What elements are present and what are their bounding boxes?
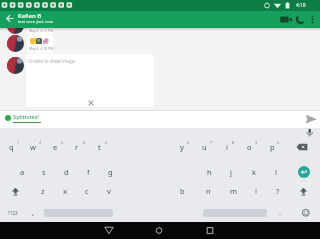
button[interactable] bbox=[299, 187, 308, 196]
button[interactable]: b bbox=[173, 184, 191, 198]
staticText: 7 bbox=[210, 140, 213, 145]
staticText: w bbox=[30, 142, 36, 152]
staticText: i bbox=[226, 142, 228, 152]
staticText: e bbox=[53, 142, 58, 152]
staticText: u bbox=[202, 142, 207, 152]
staticText: o bbox=[247, 142, 252, 152]
button[interactable] bbox=[3, 12, 16, 25]
staticText: 0 bbox=[277, 140, 280, 145]
staticText: 8 bbox=[232, 140, 235, 145]
button[interactable] bbox=[103, 225, 115, 236]
button[interactable] bbox=[296, 143, 309, 152]
button[interactable]: h bbox=[200, 165, 218, 179]
staticText: n bbox=[206, 186, 211, 196]
button[interactable] bbox=[279, 14, 294, 25]
button[interactable]: a bbox=[13, 165, 31, 179]
button[interactable]: w bbox=[24, 140, 42, 154]
button[interactable]: ? bbox=[269, 184, 287, 198]
staticText: t bbox=[98, 142, 101, 152]
staticText: p bbox=[270, 142, 275, 152]
button[interactable] bbox=[153, 225, 165, 236]
staticText: k bbox=[252, 167, 257, 177]
staticText: . bbox=[279, 207, 282, 217]
staticText: ! bbox=[255, 186, 258, 196]
staticText: d bbox=[64, 167, 69, 177]
button[interactable]: , bbox=[24, 205, 42, 219]
button[interactable] bbox=[305, 128, 315, 138]
button[interactable]: r bbox=[68, 140, 86, 154]
button[interactable] bbox=[307, 13, 318, 26]
button[interactable]: p bbox=[263, 140, 281, 154]
button[interactable]: z bbox=[34, 184, 52, 198]
staticText: x bbox=[63, 186, 67, 196]
button[interactable]: o bbox=[240, 140, 258, 154]
staticText: g bbox=[108, 167, 113, 177]
staticText: Unable to show image bbox=[28, 58, 76, 64]
button[interactable]: q bbox=[2, 140, 20, 154]
button[interactable]: k bbox=[245, 165, 263, 179]
button[interactable] bbox=[301, 208, 311, 218]
button[interactable]: n bbox=[199, 184, 217, 198]
staticText: 6 bbox=[187, 140, 190, 145]
staticText: b bbox=[180, 186, 185, 196]
staticText: 3 bbox=[61, 140, 64, 145]
button[interactable]: ?123 bbox=[4, 208, 21, 218]
button[interactable]: d bbox=[57, 165, 75, 179]
staticText: z bbox=[41, 186, 45, 196]
staticText: Kellen B bbox=[18, 12, 42, 20]
button[interactable]: l bbox=[267, 165, 285, 179]
button[interactable] bbox=[11, 187, 20, 196]
staticText: , bbox=[32, 207, 35, 217]
staticText: 4 bbox=[83, 140, 86, 145]
staticText: c bbox=[85, 186, 89, 196]
staticText: l bbox=[275, 167, 277, 177]
staticText: 5 bbox=[105, 140, 108, 145]
button[interactable]: s bbox=[35, 165, 53, 179]
button[interactable]: u bbox=[195, 140, 213, 154]
staticText: v bbox=[107, 186, 111, 196]
button[interactable]: . bbox=[271, 205, 289, 219]
staticText: r bbox=[75, 142, 79, 152]
staticText: last seen just now bbox=[18, 19, 54, 25]
staticText: h bbox=[207, 167, 212, 177]
staticText: 9 bbox=[255, 140, 258, 145]
button[interactable] bbox=[204, 225, 216, 236]
button[interactable]: j bbox=[222, 165, 240, 179]
button[interactable]: i bbox=[218, 140, 236, 154]
staticText: q bbox=[9, 142, 14, 152]
button[interactable]: m bbox=[225, 184, 243, 198]
staticText: ?123 bbox=[8, 210, 18, 216]
button[interactable]: c bbox=[78, 184, 96, 198]
button[interactable] bbox=[305, 114, 318, 125]
staticText: y bbox=[180, 142, 184, 152]
staticText: s bbox=[42, 167, 46, 177]
staticText: 2 bbox=[39, 140, 42, 145]
button[interactable]: g bbox=[101, 165, 119, 179]
button[interactable]: e bbox=[46, 140, 64, 154]
button[interactable]: y bbox=[173, 140, 191, 154]
staticText: ? bbox=[276, 186, 280, 196]
button[interactable] bbox=[295, 14, 307, 25]
staticText: j bbox=[230, 167, 232, 177]
staticText: Splittzies! bbox=[13, 113, 39, 121]
button[interactable]: t bbox=[90, 140, 108, 154]
staticText: m bbox=[230, 186, 238, 196]
button[interactable]: v bbox=[100, 184, 118, 198]
staticText: 4:10 bbox=[296, 2, 306, 9]
button[interactable]: ! bbox=[247, 184, 265, 198]
staticText: 1 bbox=[17, 140, 20, 145]
staticText: May 4, 4:13 PM bbox=[29, 28, 54, 33]
button[interactable] bbox=[0, 111, 295, 128]
staticText: a bbox=[20, 167, 25, 177]
staticText: May 4, 4:18 PM bbox=[29, 46, 54, 51]
staticText: f bbox=[87, 167, 90, 177]
button[interactable] bbox=[298, 166, 310, 178]
button[interactable]: x bbox=[56, 184, 74, 198]
button[interactable]: f bbox=[79, 165, 97, 179]
